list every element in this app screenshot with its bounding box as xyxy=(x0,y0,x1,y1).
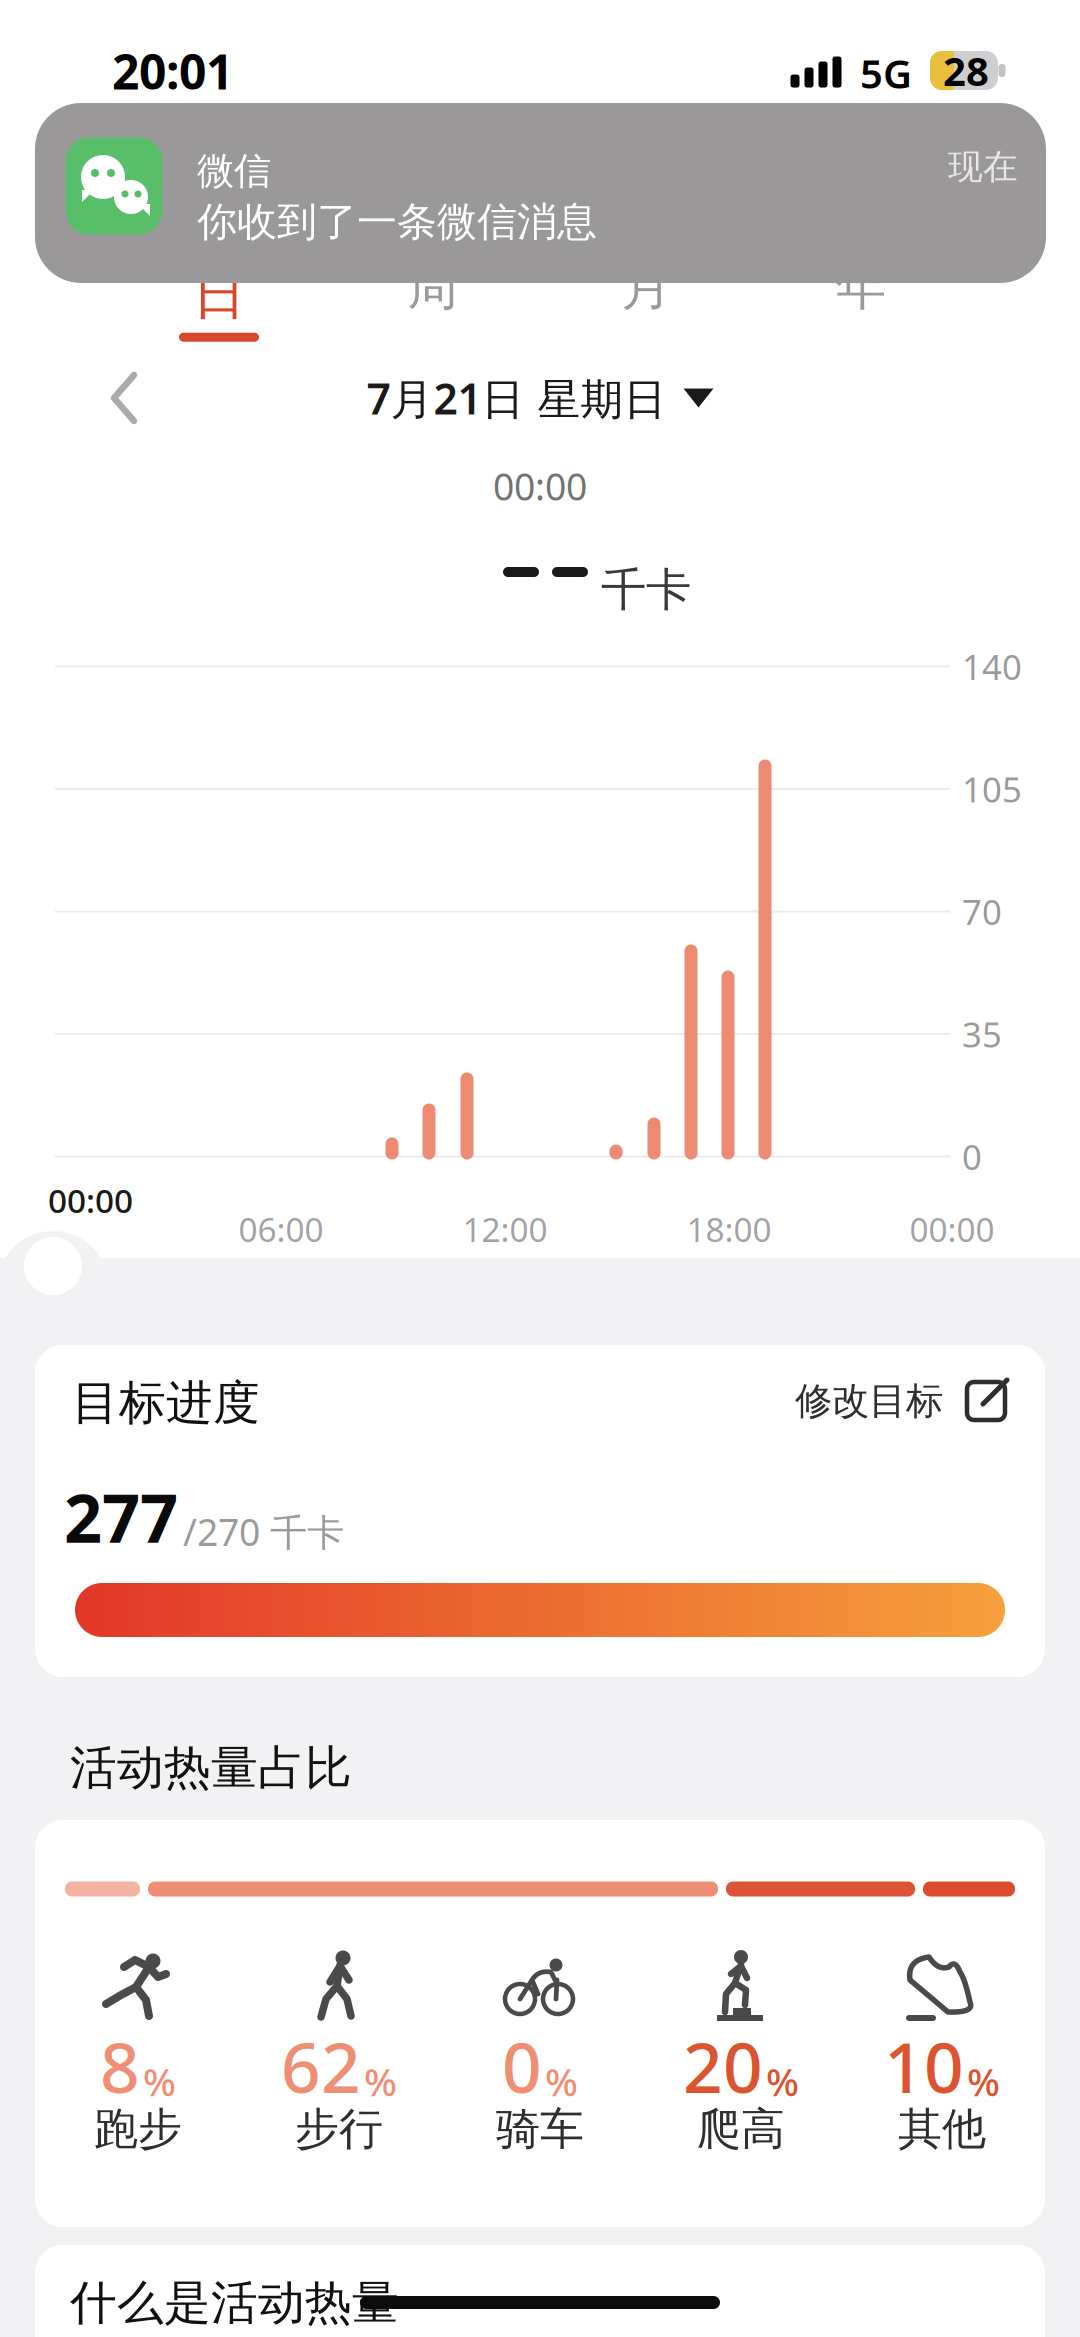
button[interactable]: 前一天 xyxy=(111,373,137,423)
staticText: 其他 xyxy=(898,2102,986,2156)
staticText: 目标进度 xyxy=(72,1374,260,1432)
staticText: 年 xyxy=(835,256,886,318)
staticText: 爬高 xyxy=(697,2102,785,2156)
staticText: /270 千卡 xyxy=(183,1507,344,1556)
button[interactable]: 7月21日 星期日 xyxy=(366,370,713,426)
staticText: 月 xyxy=(621,256,672,318)
staticText: 8 xyxy=(100,2020,140,2112)
staticText: 105 xyxy=(962,766,1022,812)
staticText: 18:00 xyxy=(686,1207,771,1251)
staticText: 140 xyxy=(962,643,1022,689)
button[interactable]: 什么是活动热量 xyxy=(35,2245,1045,2337)
staticText: 步行 xyxy=(295,2102,383,2156)
staticText: 12:00 xyxy=(462,1207,547,1251)
staticText: 日 xyxy=(192,262,245,328)
staticText: % xyxy=(143,2056,176,2107)
staticText: 周 xyxy=(407,256,458,318)
staticText: 10 xyxy=(884,2020,964,2112)
staticText: 70 xyxy=(962,888,1002,934)
staticText: 0 xyxy=(962,1133,982,1179)
staticText: 微信 xyxy=(197,148,271,194)
staticText: 跑步 xyxy=(94,2102,182,2156)
staticText: 00:00 xyxy=(48,1178,133,1222)
staticText: 现在 xyxy=(948,146,1018,188)
staticText: 骑车 xyxy=(496,2102,584,2156)
staticText: 活动热量占比 xyxy=(70,1739,352,1797)
staticText: 20:01 xyxy=(112,39,233,103)
staticText: 06:00 xyxy=(238,1207,323,1251)
button[interactable]: 日 xyxy=(179,262,259,342)
staticText: 千卡 xyxy=(601,562,691,618)
button[interactable]: 修改目标 xyxy=(795,1378,1009,1424)
staticText: 28 xyxy=(943,44,989,97)
staticText: % xyxy=(545,2056,578,2107)
staticText: 62 xyxy=(281,2020,361,2112)
staticText: % xyxy=(766,2056,799,2107)
staticText: 00:00 xyxy=(909,1207,994,1251)
staticText: 什么是活动热量 xyxy=(70,2274,399,2332)
button[interactable]: 月 xyxy=(621,256,672,318)
staticText: 0 xyxy=(502,2020,542,2112)
staticText: 00:00 xyxy=(493,461,587,511)
staticText: 277 xyxy=(64,1473,178,1561)
button[interactable]: 年 xyxy=(835,256,886,318)
staticText: 7月21日 星期日 xyxy=(366,370,666,426)
staticText: 35 xyxy=(962,1011,1002,1057)
button[interactable]: 微信 xyxy=(35,103,1046,283)
staticText: % xyxy=(967,2056,1000,2107)
button[interactable]: 周 xyxy=(407,256,458,318)
staticText: % xyxy=(364,2056,397,2107)
staticText: 你收到了一条微信消息 xyxy=(197,197,597,246)
staticText: 5G xyxy=(860,46,912,99)
staticText: 修改目标 xyxy=(795,1378,943,1424)
staticText: 20 xyxy=(683,2020,763,2112)
